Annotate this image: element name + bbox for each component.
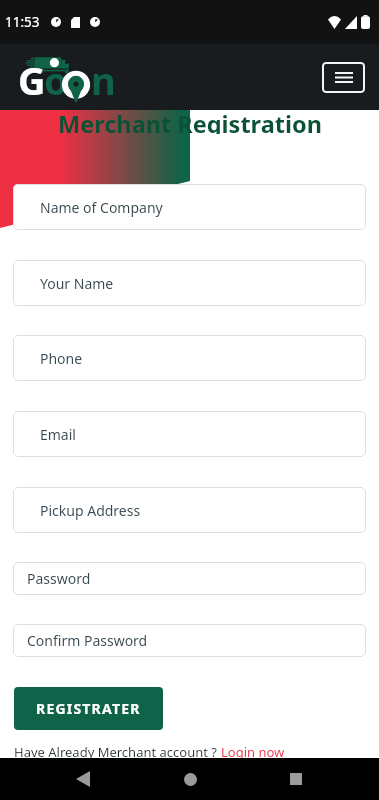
button[interactable]: Login now <box>221 743 285 761</box>
staticText: Your Name <box>40 274 114 293</box>
staticText: 11:53 <box>5 13 40 31</box>
button[interactable]: Phone <box>13 335 366 381</box>
staticText: n <box>92 54 112 106</box>
staticText: Have Already Merchant account ? <box>14 743 217 761</box>
button[interactable]: Home <box>166 758 214 800</box>
button[interactable]: Recent apps <box>272 758 320 800</box>
button[interactable]: Confirm Password <box>13 624 366 657</box>
staticText: Email <box>40 425 76 444</box>
staticText: Name of Company <box>40 198 163 217</box>
button[interactable]: Pickup Address <box>13 487 366 533</box>
staticText: G <box>18 54 44 106</box>
staticText: Confirm Password <box>27 631 148 650</box>
staticText: Login now <box>221 743 285 761</box>
button[interactable]: Password <box>13 562 366 595</box>
staticText: REGISTRATER <box>36 699 141 718</box>
button[interactable]: Email <box>13 411 366 457</box>
button[interactable]: Menu <box>322 62 365 93</box>
staticText: Merchant Registration <box>58 108 322 134</box>
button[interactable]: Name of Company <box>13 184 366 230</box>
staticText: Phone <box>40 349 83 368</box>
button[interactable]: REGISTRATER <box>14 687 163 730</box>
button[interactable]: Your Name <box>13 260 366 306</box>
staticText: o <box>44 54 66 106</box>
staticText: Pickup Address <box>40 501 141 520</box>
staticText: Password <box>27 569 91 588</box>
button[interactable]: Back <box>59 758 107 800</box>
